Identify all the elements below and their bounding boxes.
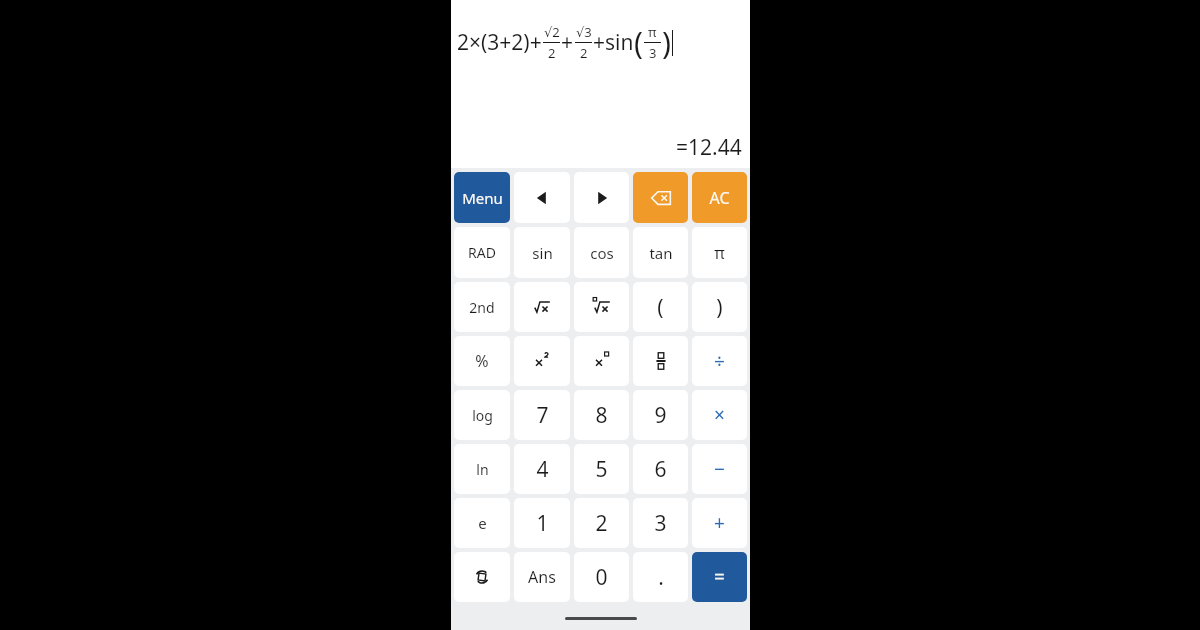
staticText: ) [716,293,723,322]
staticText: cos [590,243,614,263]
staticText: √3 [576,23,592,41]
button[interactable]: 2nd [454,282,510,332]
button[interactable]: Nth root [574,282,629,332]
button[interactable]: Left [514,172,570,223]
staticText: 3 [654,509,667,538]
button[interactable]: 4 [514,444,570,494]
staticText: 4 [536,455,549,484]
staticText: = [714,564,725,590]
button[interactable]: Backspace [633,172,688,223]
button[interactable]: sin [514,227,570,278]
staticText: RAD [468,243,496,262]
button[interactable]: π [692,227,747,278]
staticText: ) [662,22,671,63]
button[interactable]: RAD [454,227,510,278]
button[interactable]: ln [454,444,510,494]
button[interactable]: x to the power [574,336,629,386]
button[interactable]: Square root [514,282,570,332]
staticText: 0 [595,563,608,592]
staticText: 6 [654,455,667,484]
button[interactable]: ÷ [692,336,747,386]
staticText: × [714,402,725,428]
button[interactable]: Ans [514,552,570,602]
staticText: − [714,456,725,482]
staticText: AC [709,187,730,209]
staticText: 9 [654,401,667,430]
button[interactable]: Rotate screen [454,552,510,602]
button[interactable]: log [454,390,510,440]
staticText: =12.44 [676,133,742,162]
button[interactable]: Fraction [633,336,688,386]
button[interactable]: x squared [514,336,570,386]
button[interactable]: 9 [633,390,688,440]
staticText: + [714,510,725,536]
staticText: e [478,513,487,533]
button[interactable]: tan [633,227,688,278]
staticText: log [472,406,493,425]
button[interactable]: + [692,498,747,548]
staticText: 2×(3+2)+ [457,28,542,57]
staticText: +sin [593,28,634,57]
staticText: % [475,350,489,372]
button[interactable]: = [692,552,747,602]
button[interactable]: − [692,444,747,494]
staticText: 8 [595,401,608,430]
button[interactable]: 3 [633,498,688,548]
staticText: 7 [536,401,549,430]
button[interactable]: cos [574,227,629,278]
button[interactable]: Menu [454,172,510,223]
staticText: π [714,242,725,264]
button[interactable]: % [454,336,510,386]
button[interactable]: ( [633,282,688,332]
staticText: ln [476,460,489,479]
button[interactable]: Right [574,172,629,223]
staticText: ( [634,22,643,63]
staticText: 3 [649,44,657,62]
staticText: ÷ [714,348,725,374]
staticText: 5 [595,455,608,484]
button[interactable]: 1 [514,498,570,548]
staticText: ( [657,293,664,322]
staticText: + [561,28,574,57]
staticText: Ans [528,566,556,588]
staticText: 2 [548,44,556,62]
button[interactable]: 8 [574,390,629,440]
button[interactable]: 7 [514,390,570,440]
staticText: Menu [462,188,503,208]
button[interactable]: 0 [574,552,629,602]
staticText: tan [649,243,673,263]
button[interactable]: 5 [574,444,629,494]
button[interactable]: × [692,390,747,440]
staticText: 2 [580,44,588,62]
button[interactable]: 6 [633,444,688,494]
button[interactable]: ) [692,282,747,332]
button[interactable]: AC [692,172,747,223]
button[interactable]: . [633,552,688,602]
staticText: sin [532,243,553,263]
staticText: π [648,23,657,41]
staticText: 1 [536,509,549,538]
staticText: . [658,563,664,592]
staticText: 2 [595,509,608,538]
button[interactable]: e [454,498,510,548]
staticText: 2nd [469,298,495,317]
button[interactable]: 2 [574,498,629,548]
staticText: √2 [544,23,560,41]
